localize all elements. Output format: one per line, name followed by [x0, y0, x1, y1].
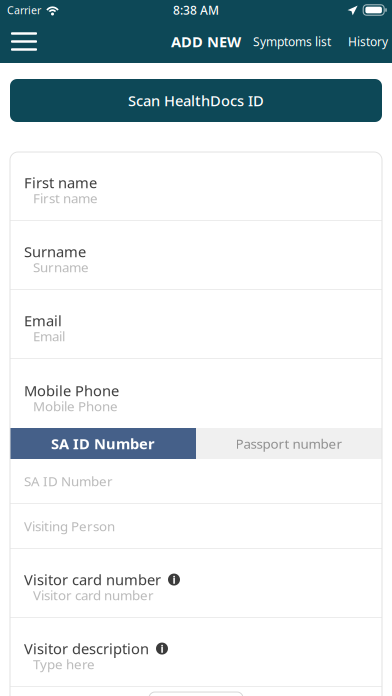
staticText: Visiting Person [24, 517, 115, 535]
staticText: Type here [33, 655, 95, 673]
staticText: History [348, 33, 388, 49]
staticText: Passport number [235, 435, 342, 452]
staticText: Email [24, 311, 62, 330]
button[interactable]: Scan HealthDocs ID [10, 79, 382, 122]
staticText: Visitor description [24, 639, 149, 658]
staticText: Carrier [7, 3, 41, 17]
staticText: First name [24, 173, 97, 192]
staticText: Visitor card number [24, 570, 161, 589]
staticText: ADD NEW [171, 32, 241, 51]
staticText: Mobile Phone [24, 381, 119, 400]
button[interactable]: History [348, 22, 388, 60]
staticText: i [172, 572, 175, 587]
staticText: Surname [24, 242, 86, 261]
staticText: i [160, 641, 163, 656]
button[interactable]: Menu [0, 22, 46, 61]
staticText: SA ID Number [24, 472, 113, 490]
button[interactable]: SA ID Number [10, 428, 196, 459]
staticText: Scan HealthDocs ID [128, 91, 264, 110]
staticText: First name [33, 189, 98, 207]
staticText: Visitor card number [33, 586, 154, 604]
staticText: SA ID Number [51, 434, 155, 453]
button[interactable]: Symptoms list [253, 22, 331, 60]
staticText: 8:38 AM [173, 2, 219, 18]
staticText: Symptoms list [253, 33, 331, 49]
staticText: Email [33, 327, 65, 345]
staticText: Surname [33, 258, 89, 276]
button[interactable]: Add visitor [149, 692, 243, 696]
button[interactable]: Passport number [196, 428, 382, 459]
staticText: Mobile Phone [33, 397, 118, 415]
